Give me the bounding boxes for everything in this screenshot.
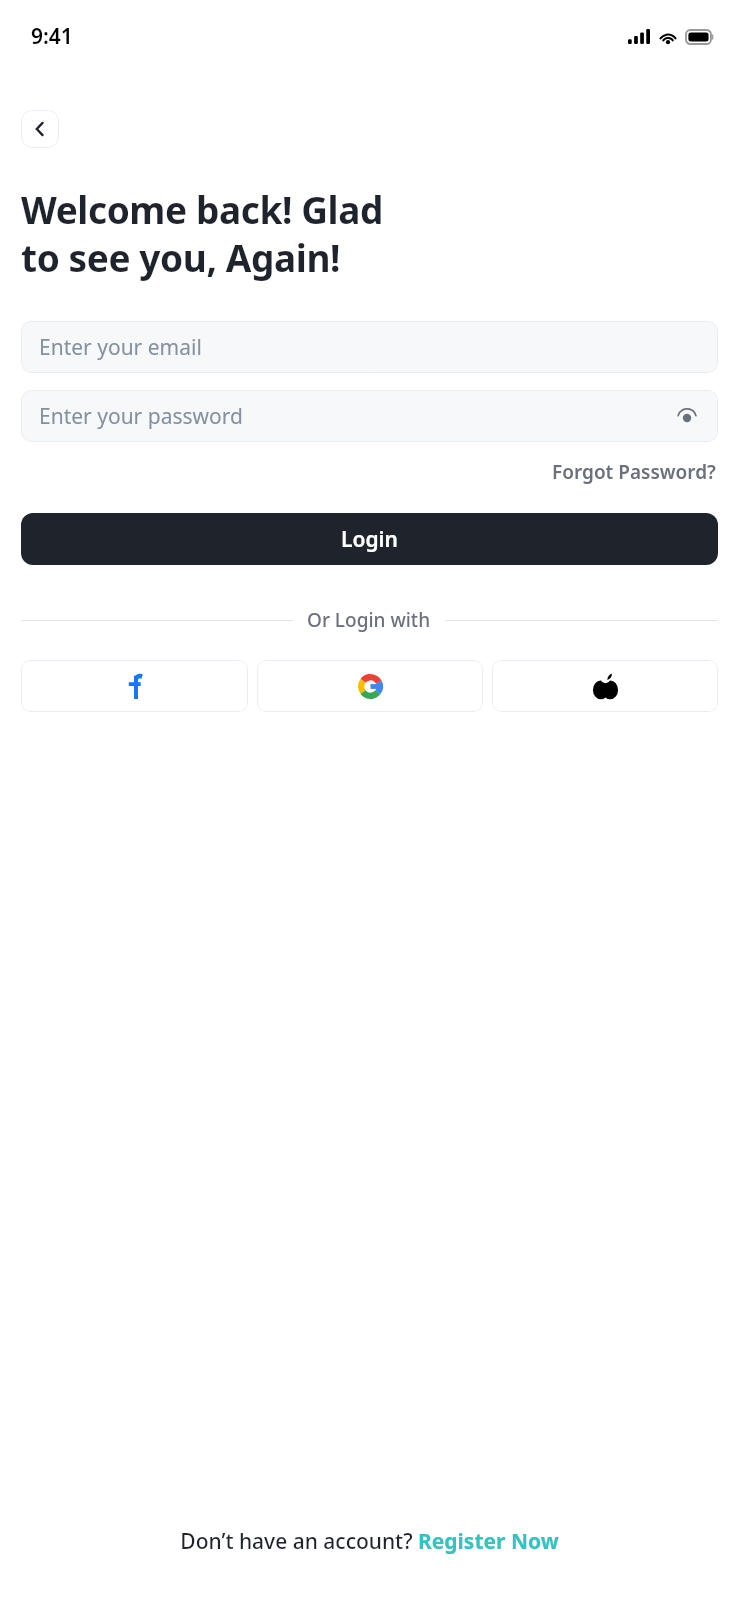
staticText: Or Login with: [307, 607, 431, 633]
staticText: Enter your password: [39, 402, 243, 431]
staticText: Welcome back! Glad to see you, Again!: [21, 184, 383, 283]
button[interactable]: Enter your email: [21, 321, 718, 373]
button[interactable]: Forgot Password?: [550, 455, 718, 489]
button[interactable]: Login: [21, 513, 718, 565]
button[interactable]: Show password: [674, 403, 700, 429]
staticText: Forgot Password?: [552, 459, 716, 485]
staticText: 9:41: [31, 22, 73, 51]
button[interactable]: Sign in with Facebook: [21, 660, 248, 712]
staticText: Login: [341, 525, 398, 554]
staticText: Enter your email: [39, 333, 202, 362]
button[interactable]: Back: [21, 110, 59, 148]
button[interactable]: Sign in with Apple: [492, 660, 718, 712]
staticText: Don’t have an account? Register Now: [180, 1527, 559, 1556]
button[interactable]: Don’t have an account? Register Now: [176, 1523, 563, 1560]
button[interactable]: Enter your password: [21, 390, 718, 442]
button[interactable]: Sign in with Google: [257, 660, 483, 712]
